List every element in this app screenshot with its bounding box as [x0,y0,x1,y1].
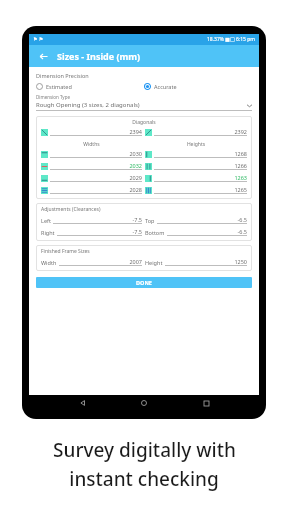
button[interactable]: 2392 [145,128,247,136]
staticText: Height [145,259,163,266]
button[interactable]: Accurate [144,83,252,90]
staticText: Sizes - Inside (mm) [57,50,141,62]
button[interactable]: Bottom [145,228,247,236]
staticText: -7.5 [53,216,142,223]
button[interactable]: Right [41,228,142,236]
staticText: 2029 [50,174,142,181]
button[interactable]: 2030 [41,150,142,158]
staticText: instant checking [69,466,219,492]
button[interactable]: 2029 [41,174,142,182]
staticText: Diagonals [41,119,247,126]
staticText: 2032 [50,162,142,169]
staticText: -6.5 [167,228,247,235]
button[interactable]: 2394 [41,128,142,136]
staticText: 1268 [154,150,247,157]
button[interactable]: 1266 [145,162,247,170]
button[interactable]: 1265 [145,186,247,194]
button[interactable]: Home [136,395,152,411]
button[interactable]: Estimated [36,83,144,90]
staticText: 2030 [50,150,142,157]
button[interactable]: Top [145,216,247,224]
staticText: 1265 [154,186,247,193]
staticText: Bottom [145,229,165,236]
staticText: Estimated [46,83,72,90]
staticText: Accurate [154,83,177,90]
button[interactable]: Width [41,258,142,266]
button[interactable]: 1268 [145,150,247,158]
staticText: Width [41,259,57,266]
button[interactable]: Recent apps [198,395,214,411]
staticText: Top [145,217,155,224]
staticText: 2392 [154,128,247,135]
staticText: Widths [41,141,142,148]
button[interactable]: 2032 [41,162,142,170]
staticText: -7.5 [57,228,142,235]
button[interactable]: Height [145,258,247,266]
staticText: Dimension Precision [36,72,89,79]
staticText: -6.5 [157,216,247,223]
staticText: 18.37% ■□ 6:15 pm [207,36,255,43]
staticText: 2007 [59,258,142,265]
staticText: ⚑ ⚑ [33,36,44,43]
staticText: Left [41,217,51,224]
button[interactable]: 2028 [41,186,142,194]
button[interactable]: 1263 [145,174,247,182]
staticText: Heights [145,141,247,148]
button[interactable]: Rough Opening (3 sizes, 2 diagonals) [36,101,252,109]
staticText: 2028 [50,186,142,193]
staticText: Dimension Type [36,94,70,100]
staticText: Finished Frame Sizes [41,248,90,255]
staticText: DONE [136,279,152,286]
staticText: 1266 [154,162,247,169]
staticText: Adjustments (Clearances) [41,206,101,213]
staticText: 2394 [50,128,142,135]
staticText: Right [41,229,55,236]
staticText: Survey digitally with [53,437,236,463]
button[interactable]: Left [41,216,142,224]
button[interactable]: DONE [36,277,252,288]
staticText: 1263 [154,174,247,181]
button[interactable]: Back [75,395,91,411]
staticText: Rough Opening (3 sizes, 2 diagonals) [36,101,140,109]
staticText: 1250 [165,258,247,265]
button[interactable]: Back [35,48,51,64]
